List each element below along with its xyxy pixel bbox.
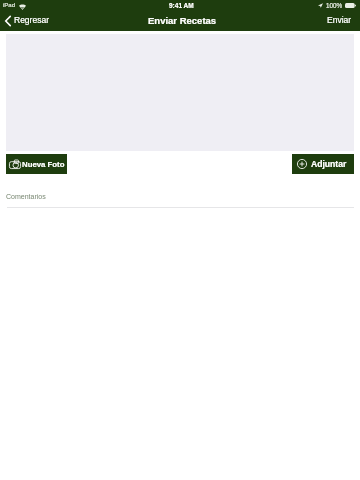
staticText: 100% — [326, 2, 343, 9]
other: Back — [5, 16, 11, 26]
button[interactable]: Attach — [292, 154, 354, 174]
other: Attach — [297, 159, 307, 169]
staticText: Regresar — [14, 15, 49, 24]
staticText: Enviar — [327, 15, 352, 24]
staticText: Comentarios — [6, 193, 46, 201]
staticText: 9:41 AM — [169, 2, 194, 9]
staticText: Adjuntar — [311, 159, 347, 169]
staticText: Nueva Foto — [22, 160, 65, 169]
button[interactable]: Enviar — [327, 15, 352, 24]
button[interactable]: Take photo — [6, 154, 67, 174]
staticText: iPad — [3, 2, 16, 9]
staticText: Enviar Recetas — [148, 15, 217, 26]
other: Take photo — [9, 159, 21, 169]
button[interactable]: Back — [5, 14, 49, 24]
other: Wi-Fi — [19, 4, 26, 10]
